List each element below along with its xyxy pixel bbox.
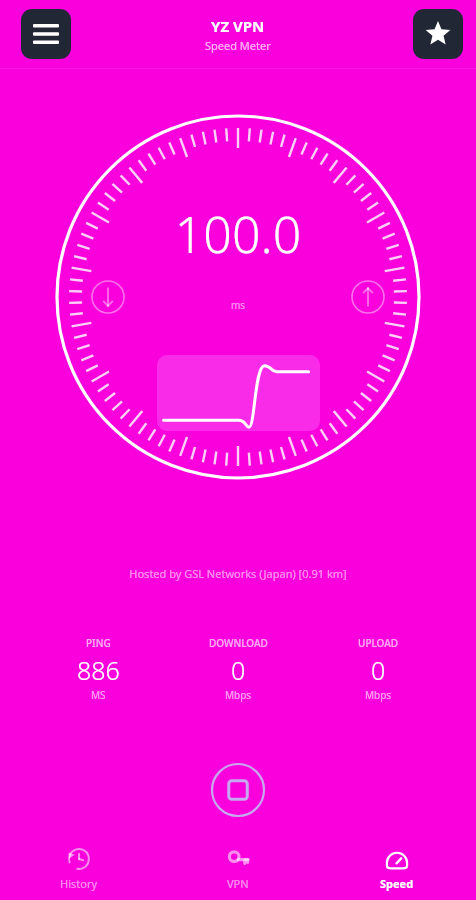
staticText: YZ VPN: [211, 16, 265, 36]
staticText: PING: [86, 636, 111, 650]
button[interactable]: Menu: [21, 9, 71, 59]
button[interactable]: History: [0, 838, 158, 900]
staticText: 886: [77, 653, 120, 687]
staticText: MS: [91, 688, 106, 702]
staticText: Hosted by GSL Networks (Japan) [0.91 km]: [0, 566, 476, 581]
staticText: Mbps: [365, 688, 392, 702]
staticText: ms: [0, 298, 476, 312]
staticText: Speed Meter: [205, 38, 271, 53]
button[interactable]: Speed: [317, 838, 476, 900]
staticText: 0: [371, 653, 386, 687]
staticText: UPLOAD: [358, 636, 399, 650]
staticText: 0: [231, 653, 246, 687]
button[interactable]: Favorite: [413, 9, 463, 59]
staticText: 100.0: [0, 200, 476, 268]
staticText: DOWNLOAD: [209, 636, 268, 650]
staticText: VPN: [227, 876, 249, 891]
button[interactable]: Stop test: [210, 762, 266, 818]
staticText: History: [60, 876, 98, 891]
staticText: Mbps: [225, 688, 252, 702]
staticText: Speed: [380, 876, 414, 891]
button[interactable]: VPN: [158, 838, 317, 900]
